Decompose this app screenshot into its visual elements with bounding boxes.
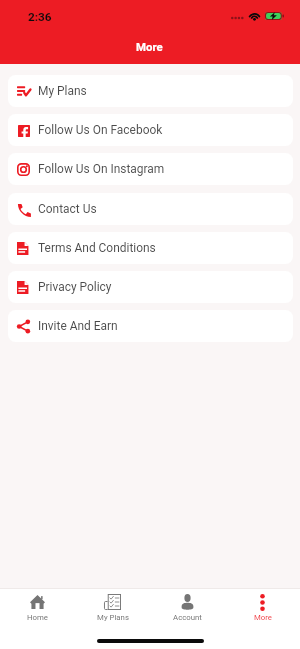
staticText: My Plans [97, 613, 129, 622]
staticText: Home [27, 613, 48, 622]
button[interactable]: Home [0, 589, 75, 631]
staticText: Follow Us On Facebook [38, 123, 163, 137]
staticText: More [254, 613, 272, 622]
button[interactable]: My Plans [75, 589, 150, 631]
staticText: More [136, 40, 163, 53]
staticText: Invite And Earn [38, 319, 118, 333]
staticText: Follow Us On Instagram [38, 162, 165, 176]
staticText: Contact Us [38, 202, 97, 216]
button[interactable]: More [225, 589, 300, 631]
button[interactable]: Contact Us [8, 193, 293, 225]
staticText: Privacy Policy [38, 280, 112, 294]
staticText: Account [173, 613, 202, 622]
button[interactable]: Privacy Policy [8, 271, 293, 303]
staticText: Terms And Conditions [38, 241, 156, 255]
button[interactable]: Follow Us On Instagram [8, 153, 293, 185]
button[interactable]: Invite And Earn [8, 310, 293, 342]
button[interactable]: Account [150, 589, 225, 631]
button[interactable]: My Plans [8, 75, 293, 107]
staticText: 2:36 [28, 10, 52, 24]
button[interactable]: Terms And Conditions [8, 232, 293, 264]
button[interactable]: Follow Us On Facebook [8, 114, 293, 146]
staticText: My Plans [38, 84, 87, 98]
